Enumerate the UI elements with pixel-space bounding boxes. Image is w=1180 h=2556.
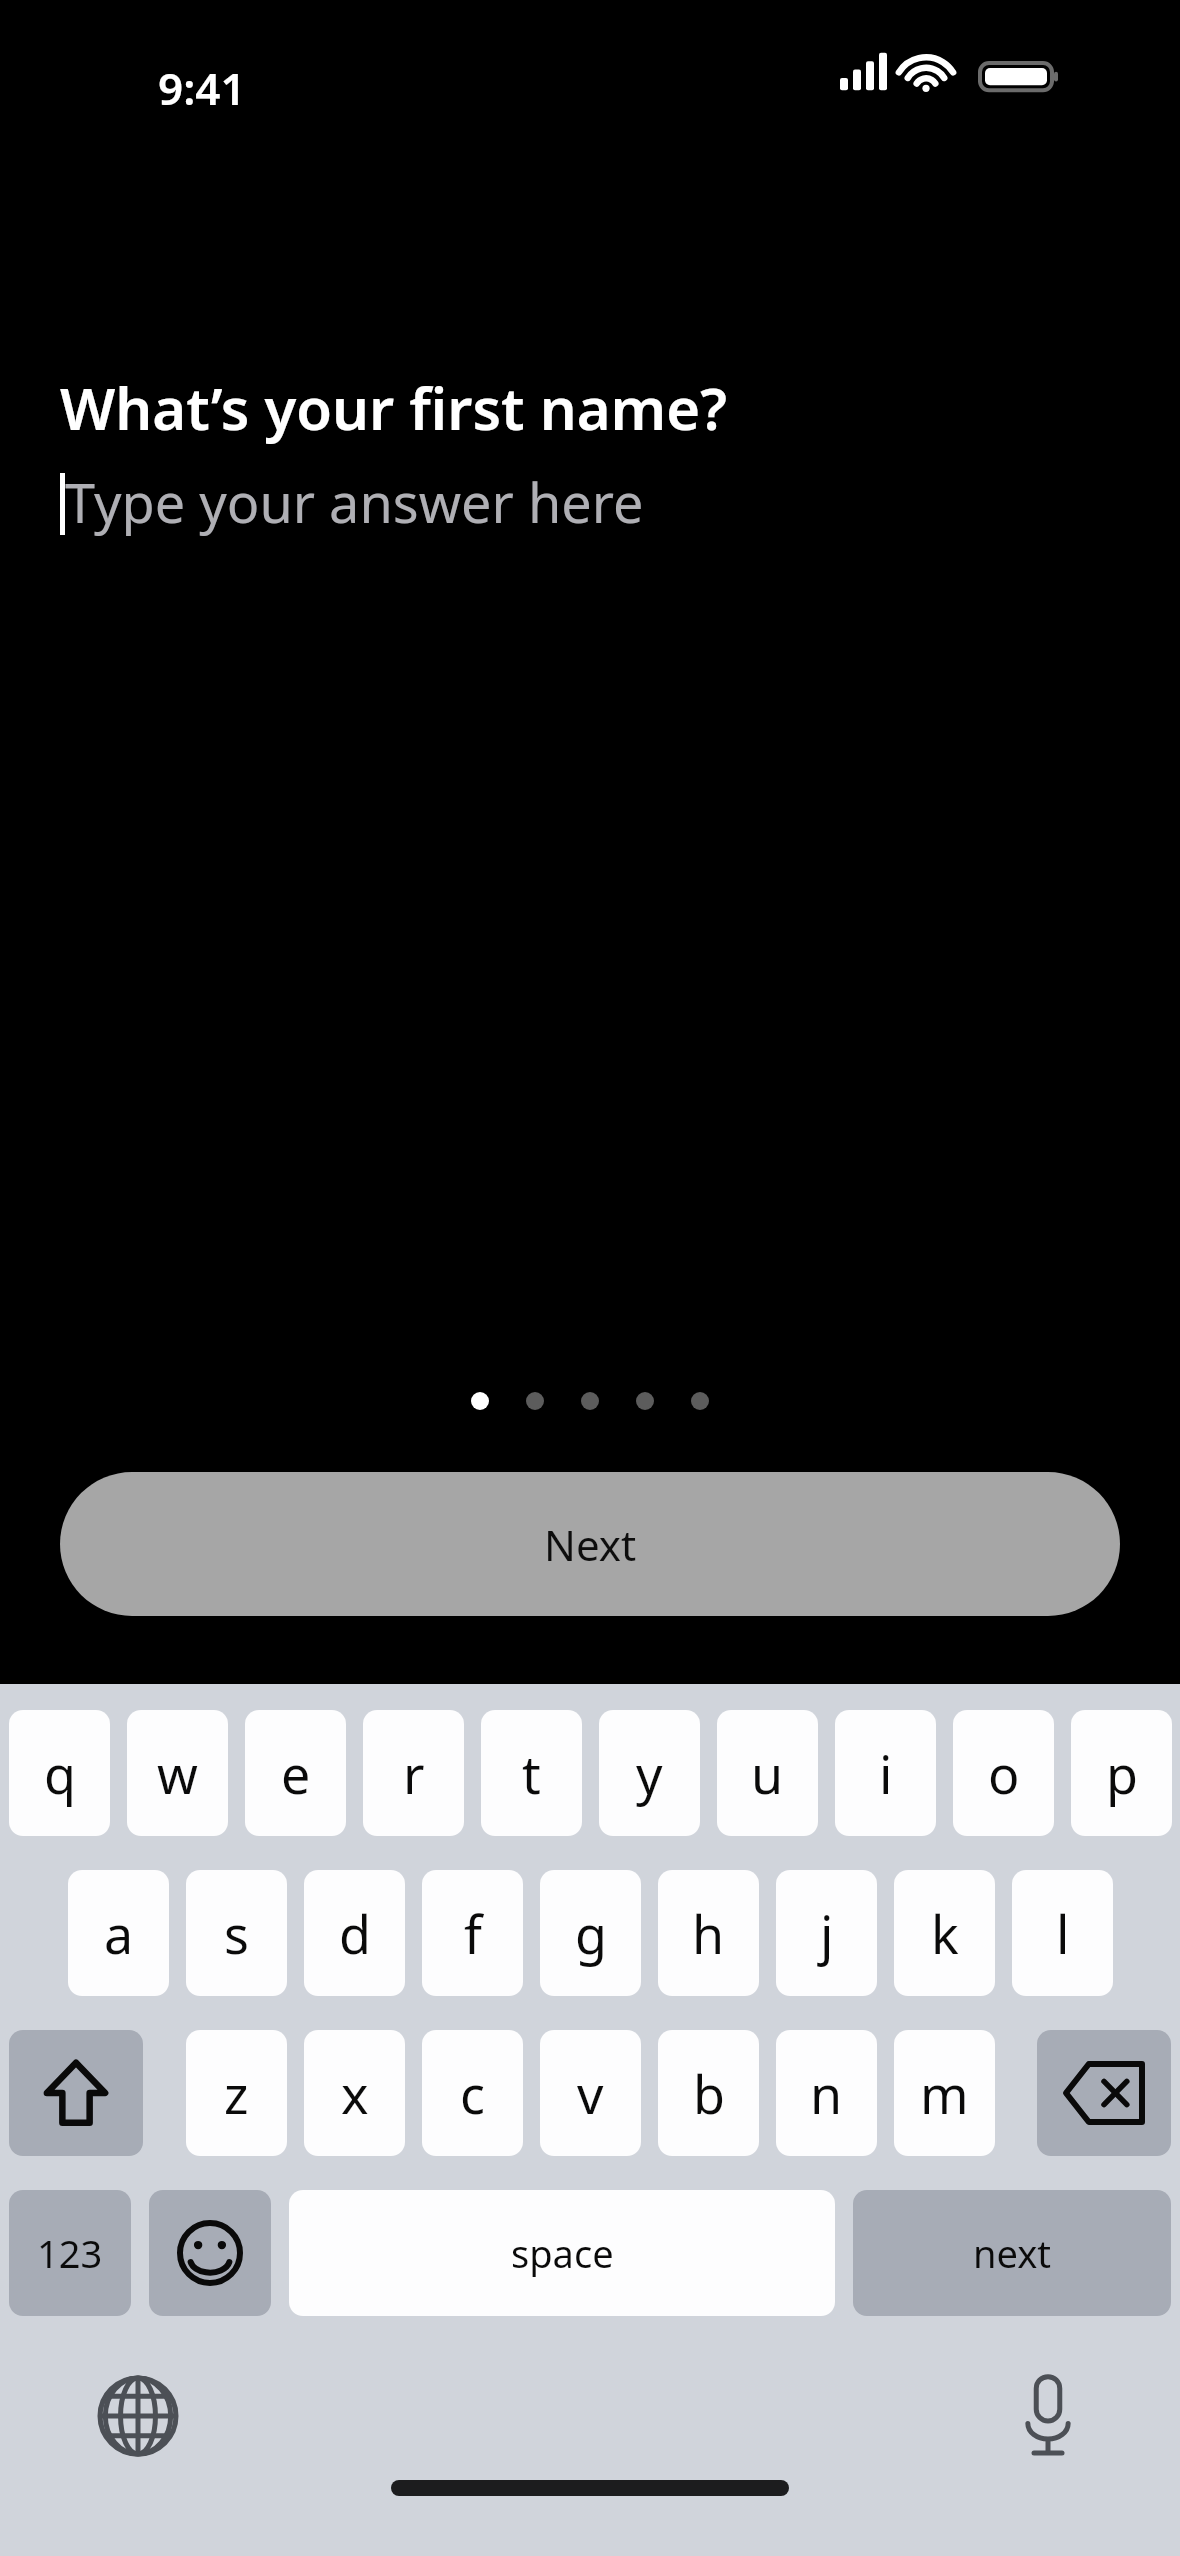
button[interactable]: Next: [60, 1472, 1120, 1616]
staticText: l: [1056, 1898, 1070, 1969]
button[interactable]: n: [776, 2030, 877, 2156]
staticText: r: [403, 1738, 425, 1809]
staticText: f: [464, 1898, 482, 1969]
button[interactable]: d: [304, 1870, 405, 1996]
button[interactable]: f: [422, 1870, 523, 1996]
staticText: p: [1106, 1738, 1138, 1809]
button[interactable]: t: [481, 1710, 582, 1836]
staticText: w: [157, 1738, 198, 1809]
button[interactable]: Change keyboard language: [90, 2368, 186, 2464]
button[interactable]: c: [422, 2030, 523, 2156]
button[interactable]: m: [894, 2030, 995, 2156]
staticText: space: [511, 2227, 614, 2279]
button[interactable]: next: [853, 2190, 1171, 2316]
staticText: x: [341, 2058, 369, 2129]
staticText: s: [224, 1898, 249, 1969]
button[interactable]: Type your answer here: [60, 465, 1180, 539]
staticText: v: [577, 2058, 604, 2129]
staticText: Next: [544, 1516, 637, 1573]
staticText: h: [692, 1898, 725, 1969]
button[interactable]: l: [1012, 1870, 1113, 1996]
button[interactable]: b: [658, 2030, 759, 2156]
staticText: k: [931, 1898, 959, 1969]
staticText: d: [339, 1898, 371, 1969]
staticText: q: [44, 1738, 76, 1809]
staticText: c: [460, 2058, 485, 2129]
button[interactable]: Emoji: [149, 2190, 271, 2316]
button[interactable]: Dictation: [1000, 2368, 1096, 2464]
button[interactable]: g: [540, 1870, 641, 1996]
staticText: 123: [37, 2227, 103, 2279]
button[interactable]: z: [186, 2030, 287, 2156]
staticText: z: [224, 2058, 249, 2129]
staticText: u: [751, 1738, 784, 1809]
staticText: o: [988, 1738, 1020, 1809]
button[interactable]: Shift: [9, 2030, 143, 2156]
button[interactable]: Numbers: [9, 2190, 131, 2316]
button[interactable]: y: [599, 1710, 700, 1836]
button[interactable]: v: [540, 2030, 641, 2156]
staticText: next: [973, 2227, 1051, 2279]
button[interactable]: u: [717, 1710, 818, 1836]
button[interactable]: e: [245, 1710, 346, 1836]
staticText: m: [920, 2058, 969, 2129]
staticText: g: [575, 1898, 607, 1969]
staticText: y: [636, 1738, 663, 1809]
button[interactable]: space: [289, 2190, 835, 2316]
staticText: a: [104, 1898, 134, 1969]
staticText: i: [879, 1738, 893, 1809]
button[interactable]: a: [68, 1870, 169, 1996]
staticText: e: [281, 1738, 311, 1809]
staticText: Type your answer here: [65, 465, 644, 539]
button[interactable]: What’s your first name?: [60, 368, 727, 447]
button[interactable]: w: [127, 1710, 228, 1836]
staticText: t: [522, 1738, 541, 1809]
button[interactable]: q: [9, 1710, 110, 1836]
staticText: j: [820, 1898, 834, 1969]
button[interactable]: s: [186, 1870, 287, 1996]
button[interactable]: h: [658, 1870, 759, 1996]
button[interactable]: x: [304, 2030, 405, 2156]
button[interactable]: Backspace: [1037, 2030, 1171, 2156]
button[interactable]: k: [894, 1870, 995, 1996]
staticText: 9:41: [158, 58, 246, 118]
staticText: b: [693, 2058, 725, 2129]
staticText: n: [810, 2058, 843, 2129]
button[interactable]: o: [953, 1710, 1054, 1836]
button[interactable]: r: [363, 1710, 464, 1836]
button[interactable]: i: [835, 1710, 936, 1836]
button[interactable]: p: [1071, 1710, 1172, 1836]
button[interactable]: j: [776, 1870, 877, 1996]
